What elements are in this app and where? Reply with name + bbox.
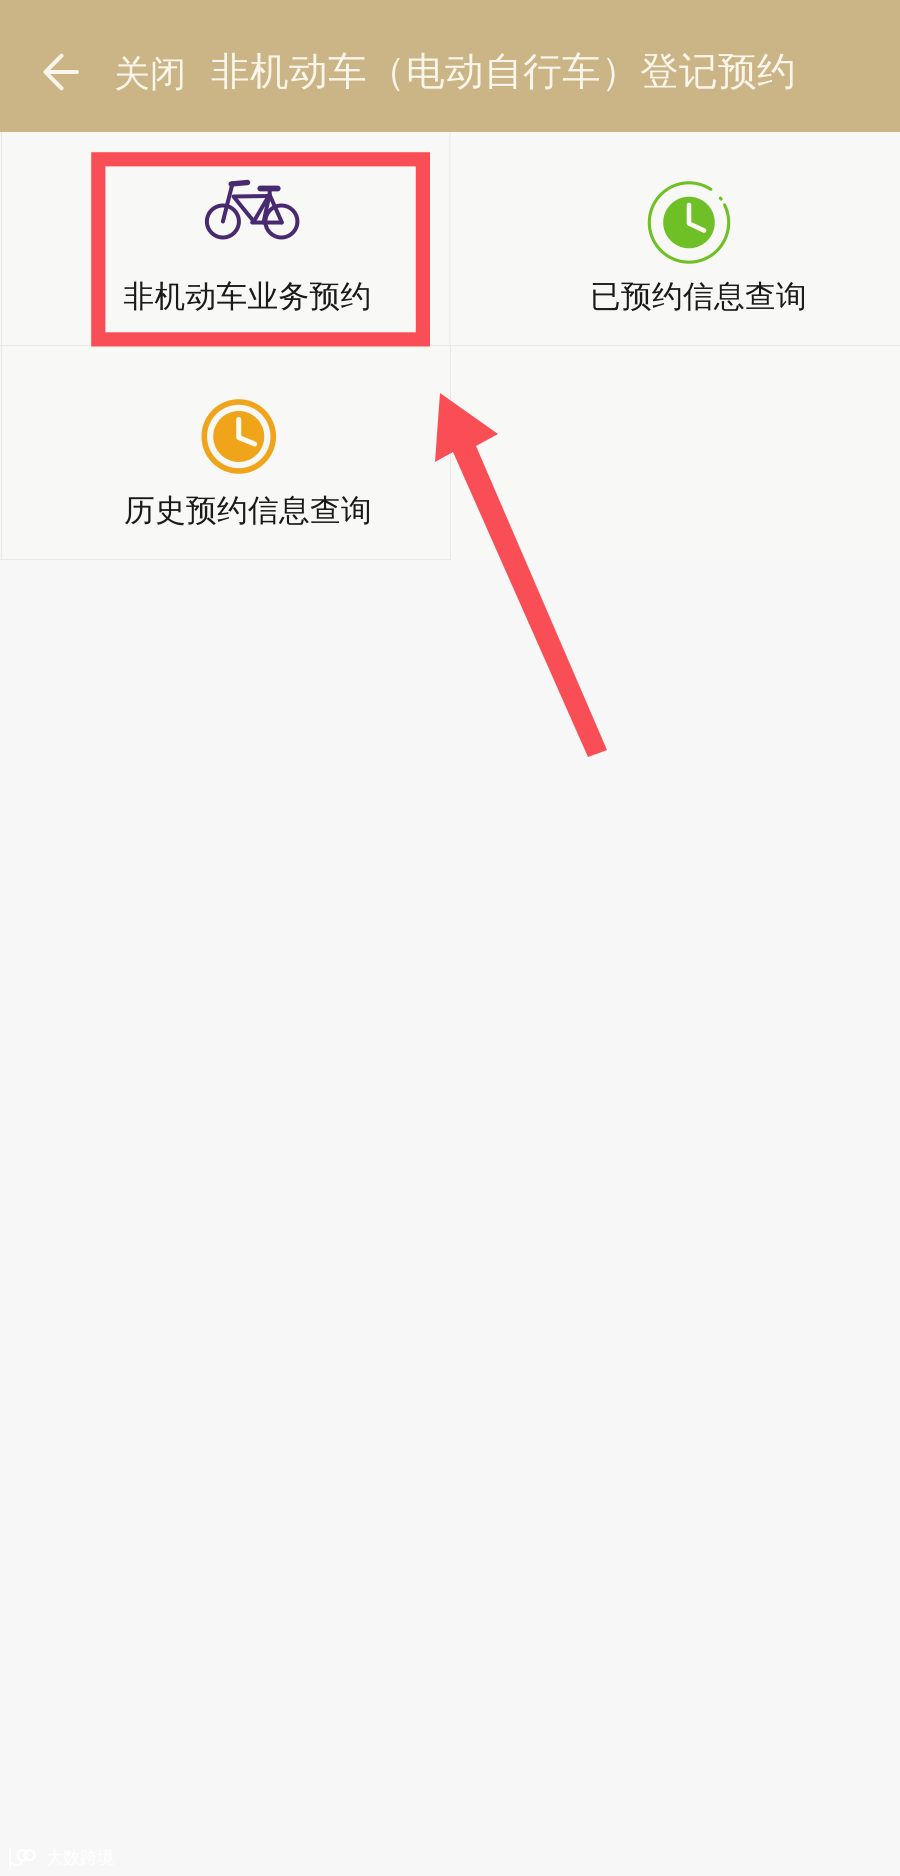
staticText: 非机动车（电动自行车）登记预约 <box>211 48 796 95</box>
button[interactable]: 已预约信息查询 <box>450 132 900 345</box>
staticText: 关闭 <box>114 52 186 96</box>
button[interactable]: 关闭 <box>0 0 214 132</box>
staticText: 非机动车业务预约 <box>123 278 371 315</box>
staticText: 已预约信息查询 <box>590 278 807 315</box>
staticText: 历史预约信息查询 <box>124 492 372 529</box>
button[interactable]: 历史预约信息查询 <box>0 346 450 559</box>
button[interactable]: 非机动车业务预约 <box>0 132 449 345</box>
